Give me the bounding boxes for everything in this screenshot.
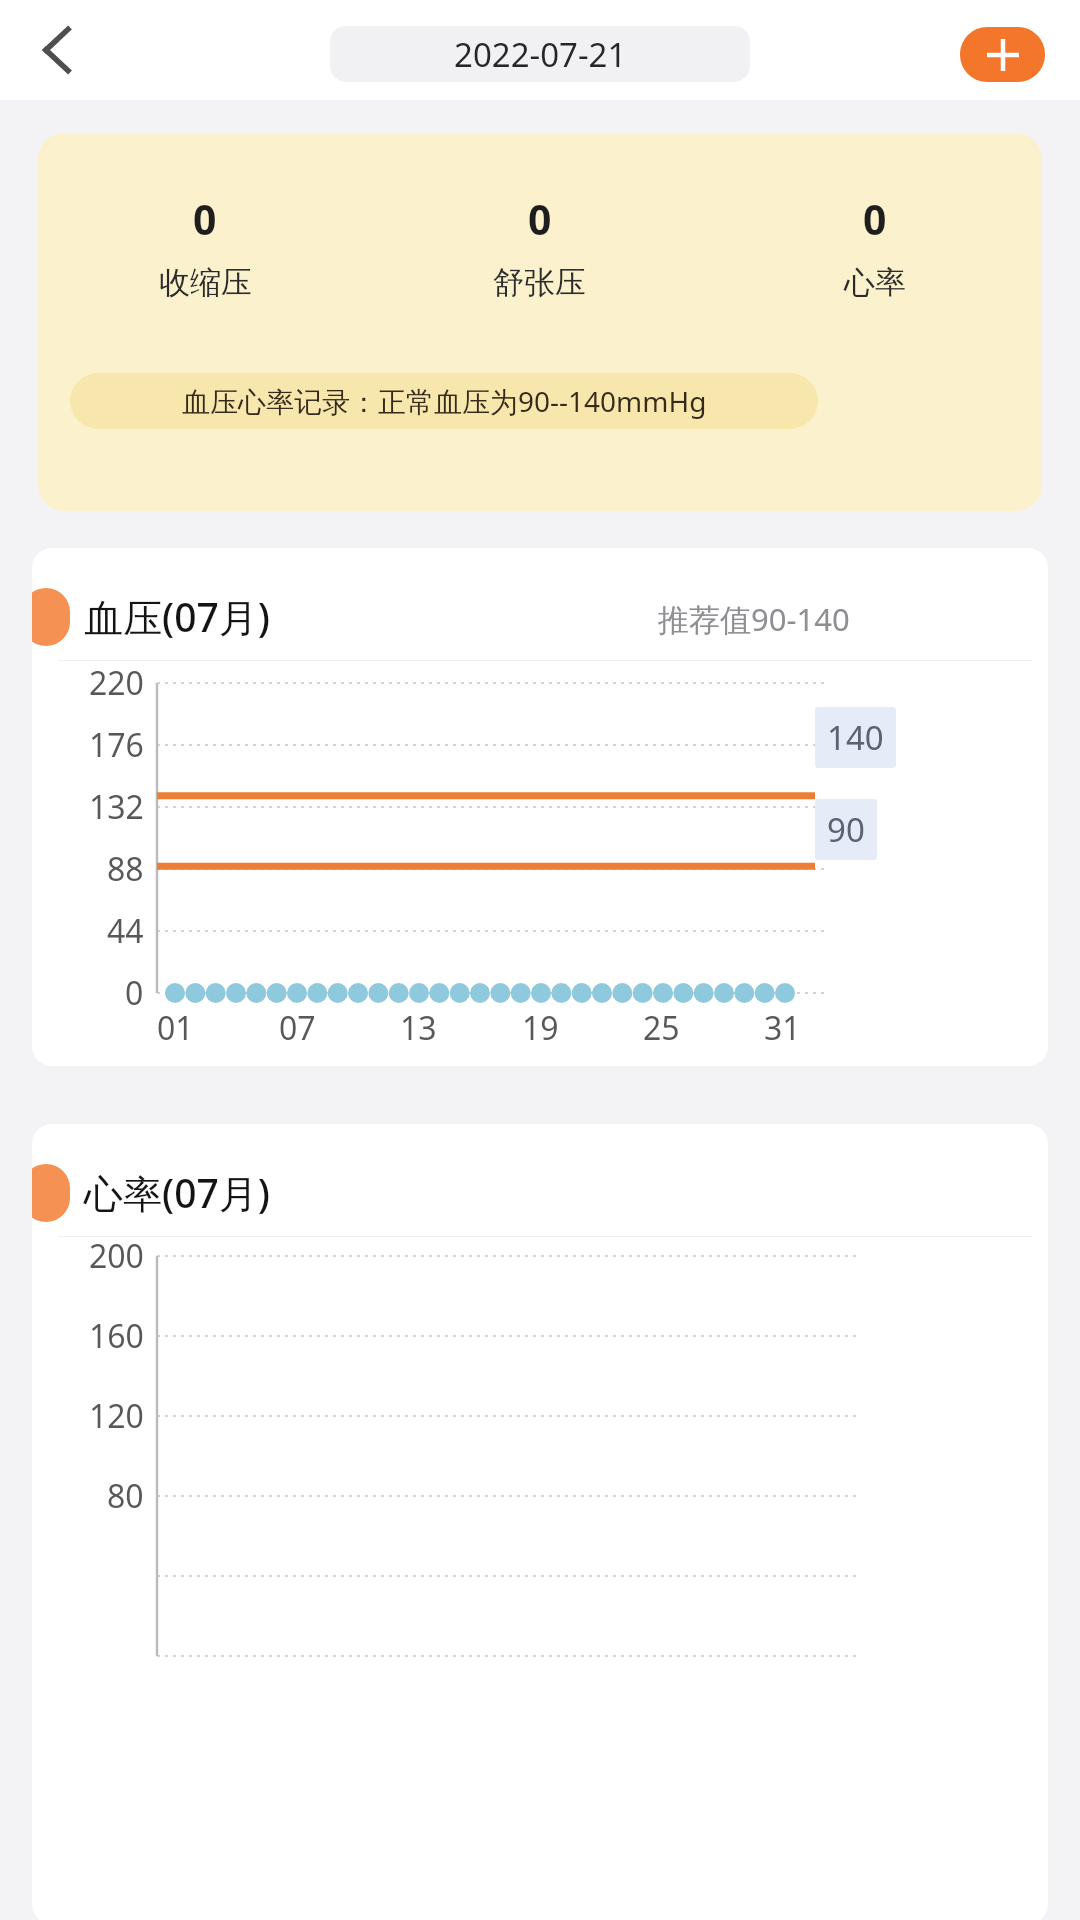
button[interactable]: Add (960, 27, 1045, 82)
button[interactable]: 血压(07月) (32, 548, 1048, 1066)
staticText: 心率(07月) (84, 1166, 270, 1219)
staticText: 2022-07-21 (454, 32, 627, 77)
staticText: 132 (89, 785, 144, 829)
button[interactable]: Back (18, 11, 96, 89)
staticText: 200 (89, 1234, 144, 1278)
button[interactable]: 心率(07月) (32, 1124, 1048, 1920)
staticText: 25 (643, 1006, 680, 1050)
staticText: 90 (827, 807, 865, 852)
staticText: 收缩压 (159, 263, 252, 302)
staticText: 07 (279, 1006, 316, 1050)
staticText: 176 (89, 723, 144, 767)
staticText: 220 (89, 661, 144, 705)
staticText: 0 (193, 191, 217, 247)
staticText: 血压(07月) (84, 590, 270, 643)
staticText: 88 (107, 847, 144, 891)
staticText: 13 (400, 1006, 437, 1050)
staticText: 120 (89, 1394, 144, 1438)
staticText: 160 (89, 1314, 144, 1358)
staticText: 血压心率记录：正常血压为90--140mmHg (182, 382, 707, 420)
staticText: 0 (863, 191, 887, 247)
staticText: 0 (528, 191, 552, 247)
staticText: 44 (107, 909, 144, 953)
button[interactable]: 0 (38, 133, 1042, 511)
staticText: 舒张压 (493, 263, 586, 302)
staticText: 80 (107, 1474, 144, 1518)
staticText: 01 (157, 1006, 194, 1050)
button[interactable]: 2022-07-21 (330, 26, 750, 82)
staticText: 19 (522, 1006, 559, 1050)
staticText: 心率 (844, 263, 906, 302)
staticText: 推荐值90-140 (658, 598, 850, 640)
staticText: 0 (125, 971, 144, 1015)
staticText: 140 (827, 715, 884, 760)
staticText: 31 (764, 1006, 801, 1050)
